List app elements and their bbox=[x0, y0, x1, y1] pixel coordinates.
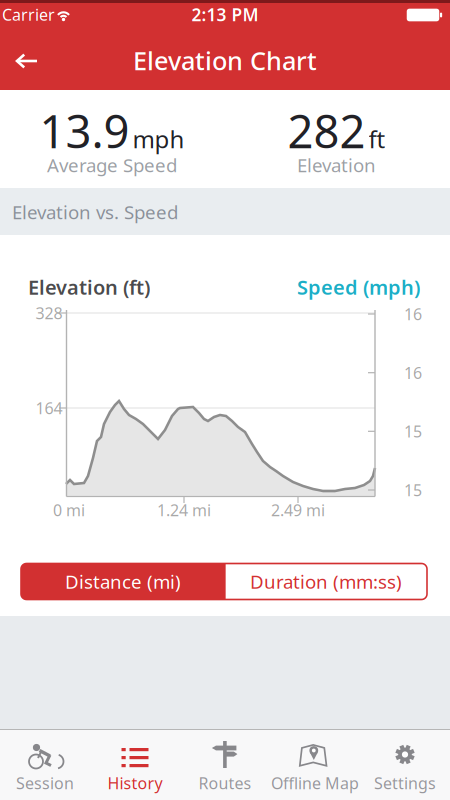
staticText: Routes bbox=[198, 772, 251, 794]
staticText: 13.9 bbox=[39, 100, 129, 161]
staticText: Distance (mi) bbox=[65, 569, 181, 594]
staticText: Elevation Chart bbox=[133, 44, 317, 77]
staticText: Session bbox=[16, 772, 74, 794]
staticText: 1.24 mi bbox=[157, 499, 211, 521]
staticText: 328 bbox=[35, 302, 62, 324]
staticText: Elevation vs. Speed bbox=[12, 200, 178, 224]
staticText: History bbox=[107, 772, 162, 794]
staticText: 2.49 mi bbox=[271, 499, 325, 521]
staticText: Elevation (ft) bbox=[28, 274, 150, 300]
staticText: 282 bbox=[287, 100, 365, 161]
staticText: 0 mi bbox=[53, 499, 85, 521]
staticText: Speed (mph) bbox=[297, 274, 420, 300]
staticText: 16 bbox=[404, 303, 422, 325]
staticText: Elevation bbox=[297, 153, 376, 177]
staticText: Offline Map bbox=[271, 772, 359, 794]
staticText: 2:13 PM bbox=[191, 3, 258, 26]
staticText: Settings bbox=[374, 772, 436, 794]
staticText: 15 bbox=[404, 421, 422, 442]
staticText: Average Speed bbox=[47, 153, 177, 177]
staticText: Carrier bbox=[2, 4, 55, 25]
staticText: Duration (mm:ss) bbox=[250, 569, 402, 594]
staticText: mph bbox=[132, 123, 184, 155]
staticText: 16 bbox=[404, 362, 422, 383]
staticText: 15 bbox=[404, 479, 422, 501]
staticText: ft bbox=[368, 123, 385, 155]
staticText: 164 bbox=[35, 397, 62, 419]
